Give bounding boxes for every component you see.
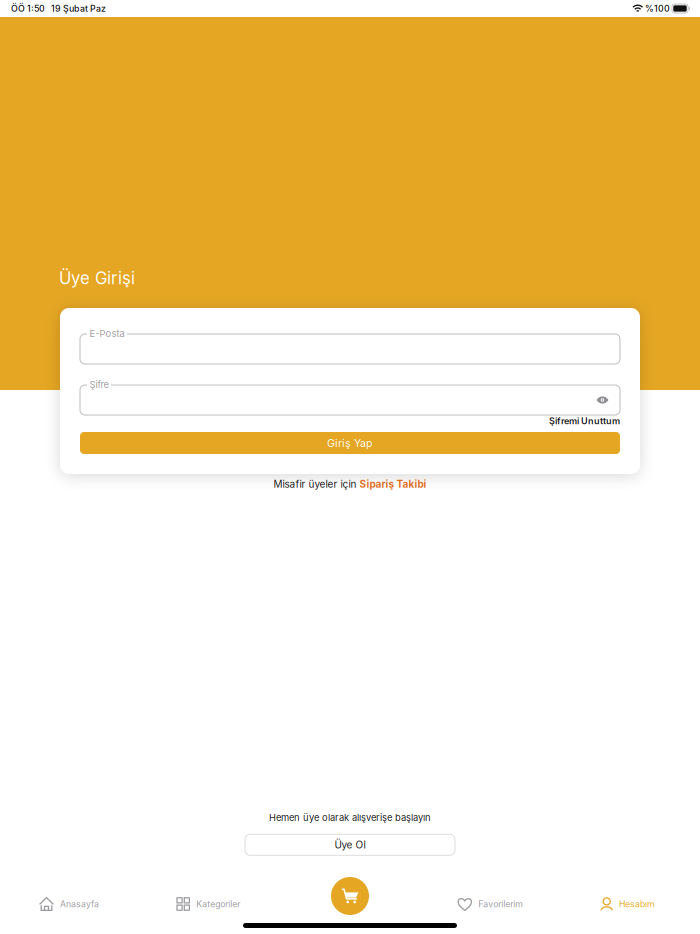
staticText: Sipariş Takibi <box>359 478 426 490</box>
staticText: E-Posta <box>89 328 124 339</box>
staticText: %100 <box>643 3 672 14</box>
button[interactable]: Sipariş Takibi <box>359 478 426 490</box>
staticText: Favorilerim <box>478 899 523 909</box>
staticText: Kategoriler <box>196 899 240 909</box>
staticText: Üye Girişi <box>59 268 135 288</box>
staticText: Giriş Yap <box>327 436 373 449</box>
staticText: Misafir üyeler için <box>273 478 359 490</box>
button[interactable]: Favorilerim <box>457 886 523 922</box>
button[interactable]: Şifremi Unuttum <box>80 415 620 427</box>
staticText: Üye Ol <box>334 839 365 851</box>
button[interactable]: Üye Ol <box>245 834 455 855</box>
staticText: Şifremi Unuttum <box>549 415 620 426</box>
staticText: Şifre <box>89 379 108 390</box>
button[interactable]: Giriş Yap <box>80 432 620 454</box>
staticText: Hesabım <box>619 899 655 909</box>
button[interactable]: Hesabım <box>600 886 655 922</box>
staticText: Anasayfa <box>60 899 99 909</box>
button[interactable]: Kategoriler <box>176 886 240 922</box>
staticText: ÖÖ 1:50 19 Şubat Paz <box>11 3 106 14</box>
button[interactable]: Sepet <box>331 877 369 915</box>
button[interactable]: Anasayfa <box>39 886 99 922</box>
staticText: Hemen üye olarak alışverişe başlayın <box>269 812 431 823</box>
